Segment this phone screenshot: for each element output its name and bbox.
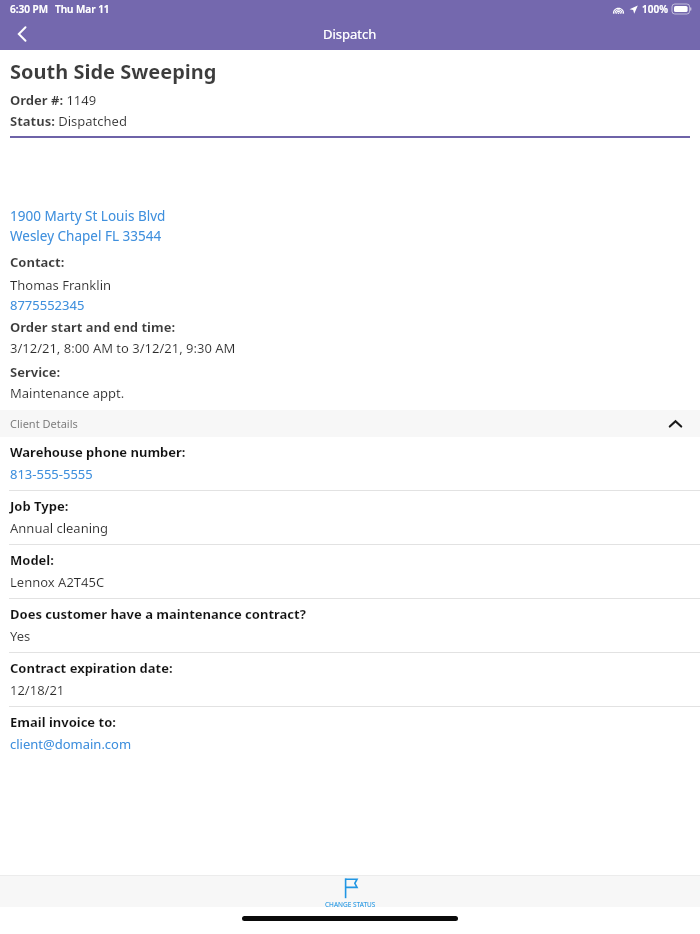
other: Collapse bbox=[658, 410, 692, 437]
button[interactable]: Back bbox=[0, 18, 44, 50]
staticText: 100% bbox=[642, 2, 668, 16]
staticText: Yes bbox=[10, 627, 31, 645]
button[interactable]: Contract expiration date: bbox=[0, 653, 700, 706]
staticText: Order #: 1149 bbox=[10, 91, 97, 109]
staticText: 6:30 PM bbox=[10, 2, 48, 16]
staticText: Does customer have a maintenance contrac… bbox=[10, 605, 306, 623]
staticText: CHANGE STATUS bbox=[325, 900, 376, 907]
staticText: Thomas Franklin bbox=[10, 276, 112, 294]
button[interactable]: CHANGE STATUS bbox=[295, 876, 405, 907]
staticText: 3/12/21, 8:00 AM to 3/12/21, 9:30 AM bbox=[10, 339, 236, 357]
button[interactable]: Model: bbox=[0, 545, 700, 598]
staticText: client@domain.com bbox=[10, 735, 132, 753]
staticText: Maintenance appt. bbox=[10, 384, 125, 402]
staticText: Service: bbox=[10, 363, 61, 381]
staticText: Email invoice to: bbox=[10, 713, 116, 731]
button[interactable]: Email invoice to: bbox=[0, 707, 700, 760]
staticText: Annual cleaning bbox=[10, 519, 109, 537]
staticText: 813-555-5555 bbox=[10, 465, 93, 483]
staticText: Status: Dispatched bbox=[10, 112, 127, 130]
staticText: South Side Sweeping bbox=[10, 58, 217, 85]
staticText: Contract expiration date: bbox=[10, 659, 173, 677]
staticText: Model: bbox=[10, 551, 54, 569]
button[interactable]: 1900 Marty St Louis Blvd bbox=[10, 207, 166, 225]
button[interactable]: 8775552345 bbox=[10, 296, 85, 314]
staticText: 12/18/21 bbox=[10, 681, 65, 699]
button[interactable]: Does customer have a maintenance contrac… bbox=[0, 599, 700, 652]
staticText: Job Type: bbox=[10, 497, 69, 515]
staticText: Dispatch bbox=[323, 25, 377, 43]
staticText: Order start and end time: bbox=[10, 318, 176, 336]
button[interactable]: Warehouse phone number: bbox=[0, 437, 700, 490]
staticText: Thu Mar 11 bbox=[55, 2, 110, 16]
button[interactable]: Wesley Chapel FL 33544 bbox=[10, 227, 162, 245]
button[interactable]: Client Details bbox=[0, 410, 700, 437]
staticText: Client Details bbox=[10, 416, 78, 431]
staticText: Contact: bbox=[10, 253, 65, 271]
button[interactable]: Job Type: bbox=[0, 491, 700, 544]
staticText: Warehouse phone number: bbox=[10, 443, 186, 461]
staticText: Lennox A2T45C bbox=[10, 573, 105, 591]
